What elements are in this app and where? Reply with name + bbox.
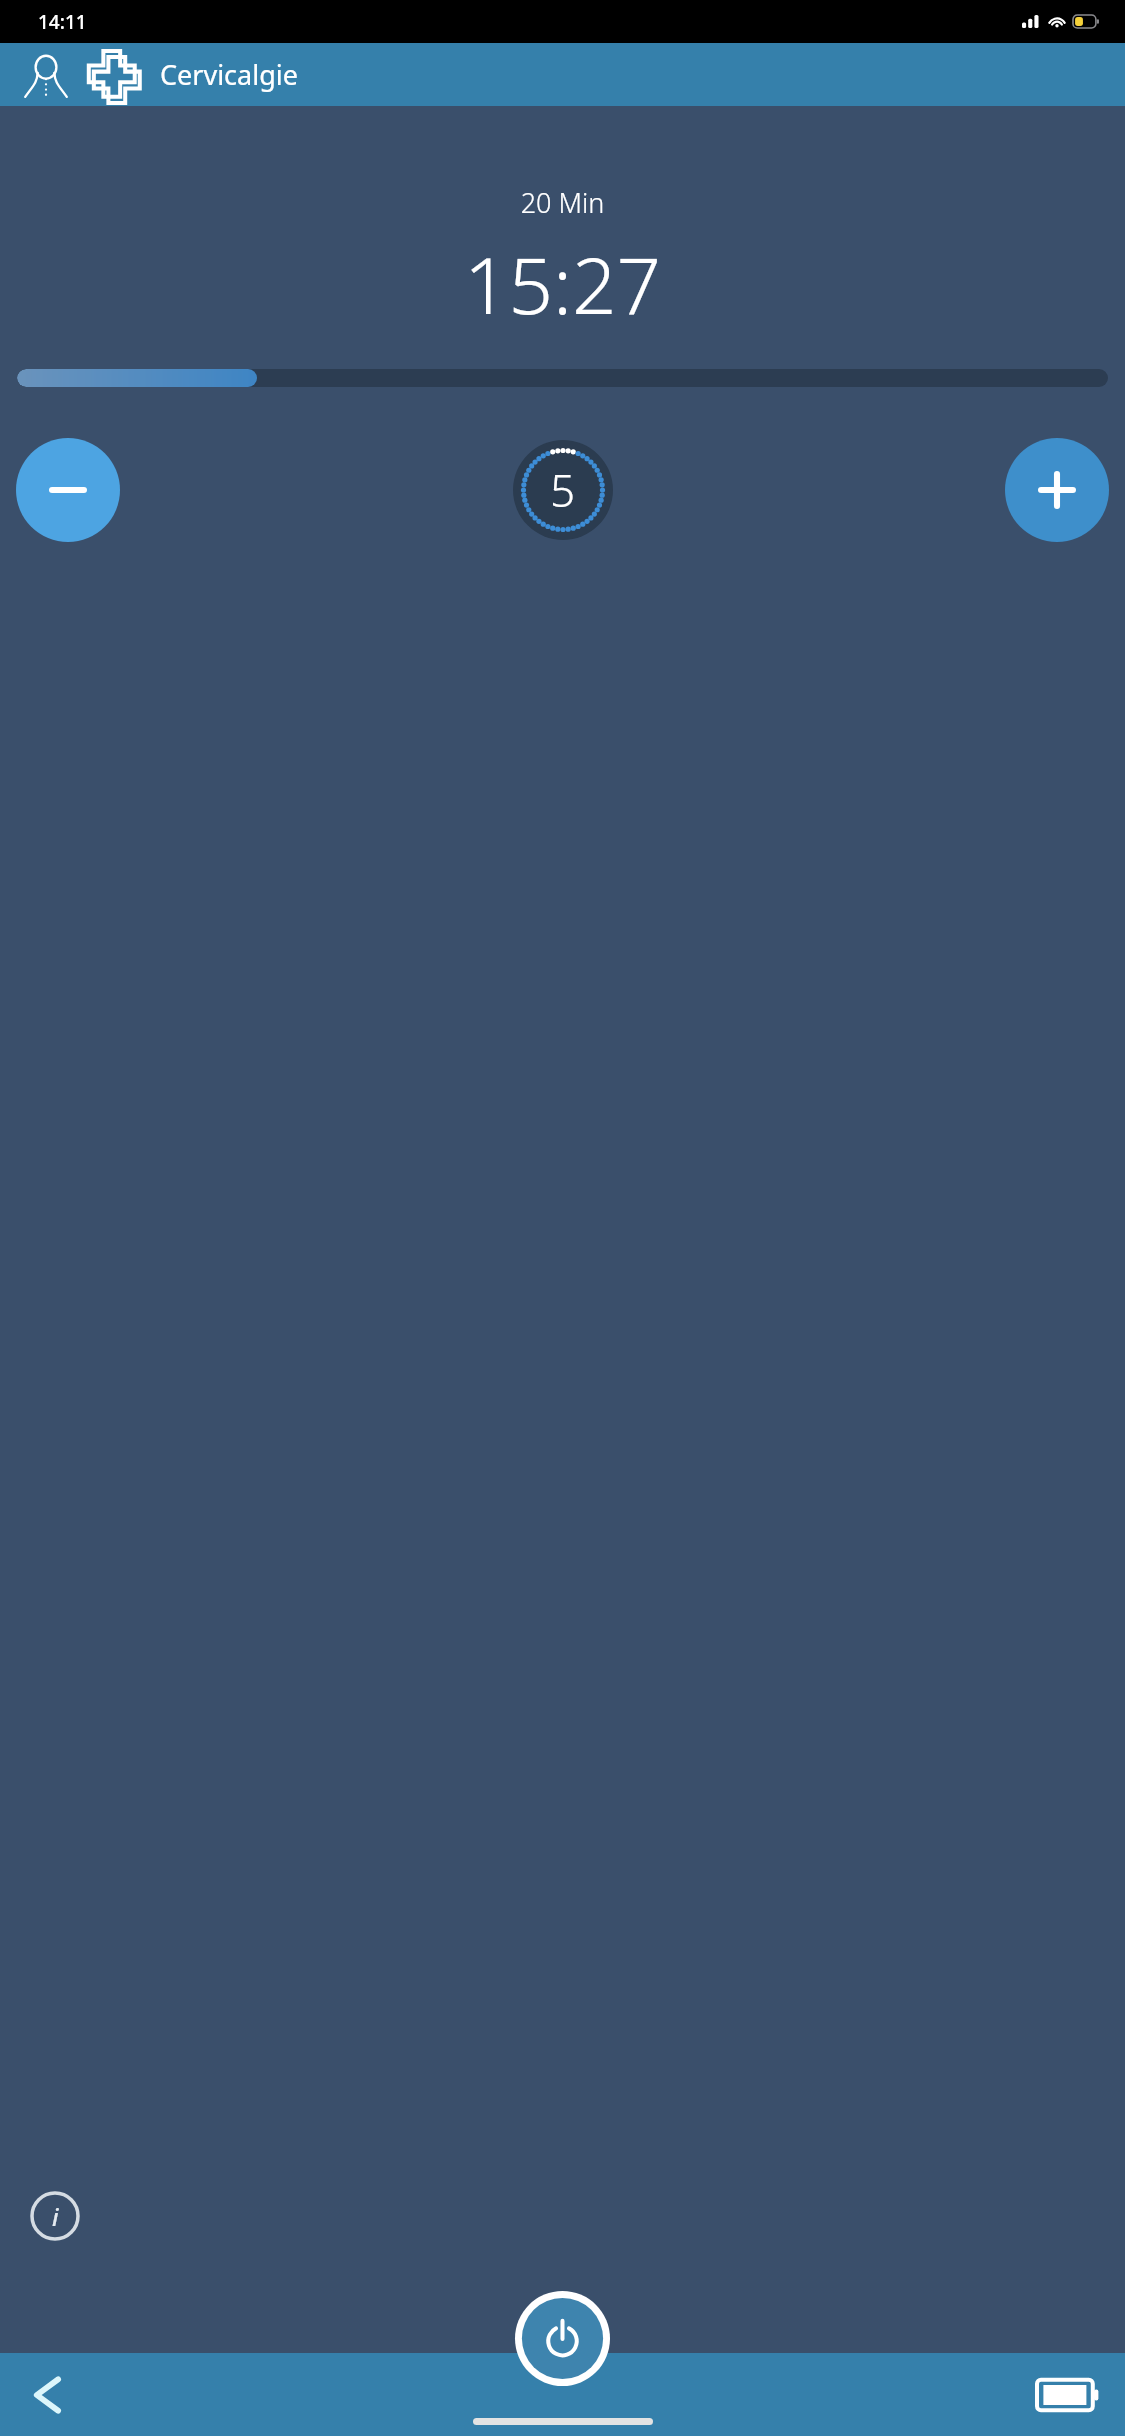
other: Neck [20,49,72,101]
staticText: 15:27 [0,231,1125,337]
button[interactable]: Increase [1005,438,1109,542]
button[interactable]: Information [30,2191,80,2241]
staticText: 5 [550,460,576,520]
staticText: 20 Min [0,184,1125,221]
button[interactable]: Back [20,2367,76,2423]
other: Medical [86,47,142,103]
button[interactable]: Intensity dial [513,440,613,540]
button[interactable]: Decrease [16,438,120,542]
button[interactable]: Power [515,2291,610,2386]
button[interactable]: Battery [1037,2375,1099,2415]
staticText: 14:11 [38,9,87,35]
staticText: Cervicalgie [160,56,298,93]
staticText: i [52,2200,59,2233]
